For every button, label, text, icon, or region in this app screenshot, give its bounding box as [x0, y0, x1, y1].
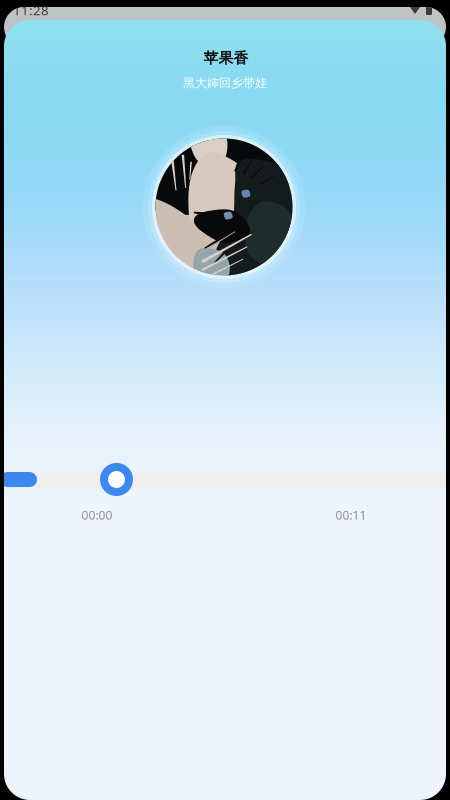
staticText: 00:00 [81, 507, 112, 523]
button[interactable]: Album artwork [143, 126, 305, 288]
staticText: 00:11 [335, 507, 366, 523]
button[interactable]: 苹果香 [126, 46, 326, 70]
button[interactable]: Playback position [4, 461, 446, 499]
staticText: 黑大婶回乡带娃 [183, 76, 267, 90]
staticText: 11:28 [13, 1, 49, 19]
staticText: 苹果香 [203, 49, 248, 67]
